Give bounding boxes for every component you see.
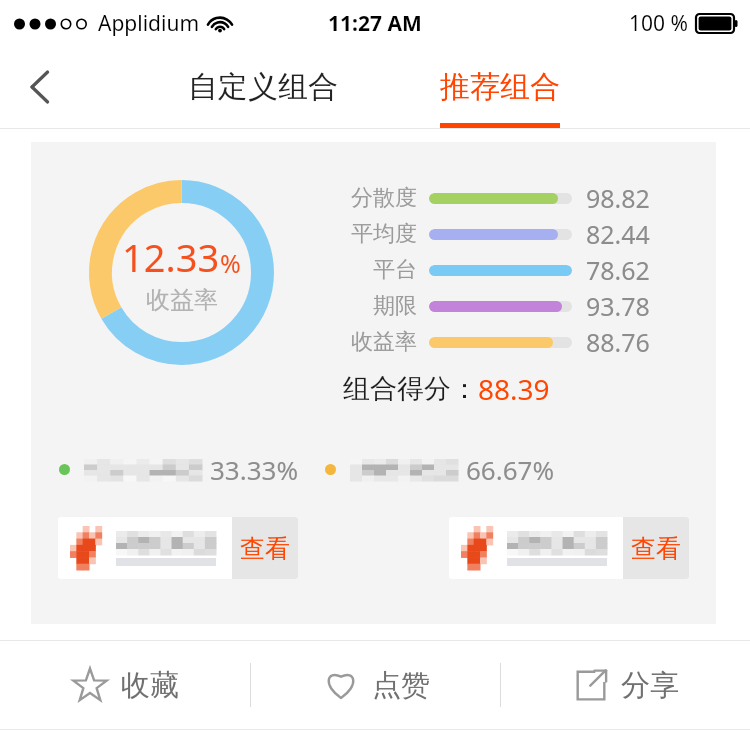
- staticText: 期限: [331, 292, 417, 320]
- staticText: 11:27 AM: [328, 9, 422, 38]
- staticText: 收藏: [121, 667, 179, 704]
- staticText: 88.76: [586, 325, 650, 359]
- staticText: 收益率: [146, 285, 218, 315]
- staticText: 66.67%: [466, 452, 555, 487]
- button[interactable]: 分享: [501, 641, 750, 729]
- staticText: %: [220, 246, 241, 280]
- staticText: 98.82: [586, 181, 650, 215]
- button[interactable]: 自定义组合: [180, 60, 346, 114]
- button[interactable]: 查看: [623, 517, 689, 579]
- staticText: 平台: [331, 256, 417, 284]
- button[interactable]: 查看: [232, 517, 298, 579]
- staticText: 查看: [631, 533, 681, 564]
- staticText: 82.44: [586, 217, 650, 251]
- button[interactable]: Back: [8, 55, 72, 119]
- staticText: 93.78: [586, 289, 650, 323]
- staticText: 自定义组合: [188, 68, 338, 106]
- button[interactable]: 查看: [58, 517, 298, 579]
- staticText: 分享: [621, 667, 679, 704]
- button[interactable]: 点赞: [251, 641, 500, 729]
- staticText: 分散度: [331, 184, 417, 212]
- staticText: 88.39: [478, 370, 550, 408]
- staticText: 12.33: [122, 231, 220, 283]
- button[interactable]: 收藏: [0, 641, 250, 729]
- staticText: 点赞: [372, 667, 430, 704]
- staticText: 收益率: [331, 328, 417, 356]
- button[interactable]: 查看: [449, 517, 689, 579]
- staticText: 78.62: [586, 253, 650, 287]
- staticText: 平均度: [331, 220, 417, 248]
- staticText: Applidium: [98, 9, 200, 38]
- staticText: 推荐组合: [440, 68, 560, 106]
- staticText: 组合得分：: [343, 372, 478, 406]
- staticText: 查看: [240, 533, 290, 564]
- button[interactable]: 推荐组合: [432, 60, 568, 114]
- staticText: 100 %: [629, 9, 688, 38]
- staticText: 33.33%: [210, 452, 299, 487]
